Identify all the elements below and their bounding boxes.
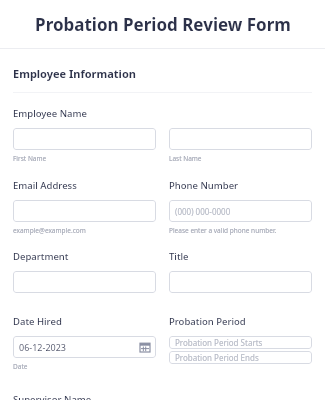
staticText: Employee Information [13, 66, 136, 81]
staticText: Supervisor Name [13, 393, 92, 400]
staticText: Email Address [13, 179, 77, 192]
staticText: First Name [13, 154, 47, 163]
staticText: Last Name [169, 154, 202, 163]
staticText: Probation Period Starts [175, 337, 263, 348]
button[interactable]: 06-12-2023 [13, 336, 156, 358]
staticText: Probation Period Review Form [35, 13, 291, 36]
button[interactable] [169, 271, 312, 293]
button[interactable] [13, 128, 156, 150]
staticText: Probation Period Ends [175, 352, 259, 363]
staticText: 06-12-2023 [19, 341, 66, 353]
button[interactable]: Probation Period Ends [169, 351, 312, 364]
staticText: example@example.com [13, 226, 86, 235]
staticText: Title [169, 250, 189, 263]
staticText: Phone Number [169, 179, 239, 192]
button[interactable]: Pick date [140, 342, 150, 352]
button[interactable] [169, 128, 312, 150]
button[interactable]: (000) 000-0000 [169, 200, 312, 222]
button[interactable] [13, 271, 156, 293]
staticText: Date [13, 362, 28, 371]
staticText: Department [13, 250, 69, 263]
staticText: Please enter a valid phone number. [169, 226, 277, 235]
staticText: Employee Name [13, 107, 88, 120]
staticText: Date Hired [13, 315, 62, 328]
button[interactable] [13, 200, 156, 222]
button[interactable]: Probation Period Starts [169, 336, 312, 349]
staticText: Probation Period [169, 315, 246, 328]
staticText: (000) 000-0000 [175, 206, 231, 217]
